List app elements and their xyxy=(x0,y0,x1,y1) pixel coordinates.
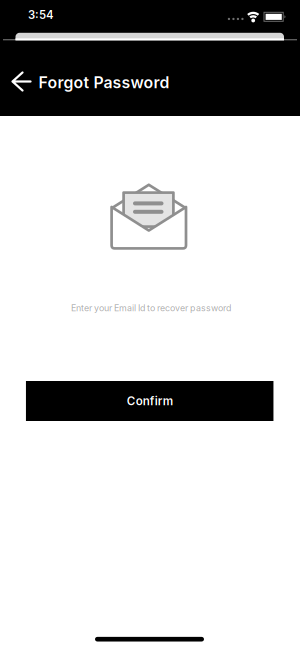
staticText: Confirm xyxy=(127,394,173,408)
staticText: Enter your Email Id to recover password xyxy=(71,303,231,313)
button[interactable]: Back xyxy=(7,70,37,93)
staticText: Forgot Password xyxy=(38,73,169,92)
button[interactable]: Confirm xyxy=(26,381,273,421)
staticText: 3:54 xyxy=(28,8,54,22)
